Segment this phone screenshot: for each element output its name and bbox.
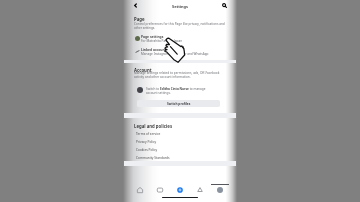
staticText: Page — [134, 16, 145, 22]
button[interactable]: Cookies Policy — [130, 146, 230, 154]
staticText: Manage Instagram, Messenger and WhatsApp — [141, 52, 209, 56]
button[interactable]: Community Standards — [130, 154, 230, 162]
button[interactable]: Profile — [217, 187, 223, 193]
staticText: Cookies Policy — [136, 148, 158, 152]
staticText: Manage settings related to permissions, … — [134, 71, 225, 79]
button[interactable]: Linked accounts — [132, 47, 230, 56]
staticText: For Matrahita Pasar in Japan — [141, 39, 183, 43]
button[interactable]: Privacy Policy — [130, 138, 230, 146]
button[interactable]: Page settings — [132, 34, 230, 43]
staticText: Community Standards — [136, 156, 170, 160]
staticText: Legal and policies — [134, 123, 173, 129]
staticText: Terms of service — [136, 132, 161, 136]
button[interactable]: Meta AI — [176, 186, 184, 194]
staticText: Settings — [124, 4, 236, 9]
button[interactable]: Notifications — [196, 186, 204, 194]
button[interactable]: Search — [221, 2, 228, 9]
button[interactable]: Switch profiles — [137, 100, 220, 107]
staticText: Switch to Editha Cinta Nurse to manage a… — [146, 87, 209, 95]
staticText: Control preferences for this Page like p… — [134, 22, 225, 30]
button[interactable]: Video — [156, 186, 164, 194]
button[interactable]: Back — [132, 2, 139, 9]
button[interactable]: Home — [136, 186, 144, 194]
staticText: Privacy Policy — [136, 140, 157, 144]
staticText: Page settings — [141, 34, 164, 38]
staticText: Account — [134, 67, 152, 73]
staticText: Linked accounts — [141, 47, 168, 51]
staticText: Switch profiles — [167, 102, 191, 106]
button[interactable]: Terms of service — [130, 130, 230, 138]
